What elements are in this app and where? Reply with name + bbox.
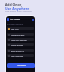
button[interactable]: My Wallet [7, 18, 34, 21]
staticText: Payment methods [7, 23, 24, 26]
staticText: PayPal account [11, 44, 23, 46]
staticText: Continue [17, 64, 26, 67]
staticText: Use Anywhere [5, 6, 30, 11]
staticText: My Wallet [10, 18, 21, 21]
button[interactable]: Add a new card [7, 54, 34, 57]
button[interactable]: Continue [7, 63, 35, 68]
button[interactable]: PayPal account [7, 43, 34, 46]
button[interactable]: Mastercard 8890 [7, 33, 34, 36]
staticText: Mastercard 8890 [11, 34, 25, 36]
button[interactable]: Visa 4421 [7, 27, 34, 30]
button[interactable]: Bank account 12 [7, 49, 34, 52]
staticText: Bank account 12 [11, 50, 25, 52]
button[interactable]: Apple Pay personal [7, 38, 34, 41]
staticText: Add a new card [11, 55, 24, 57]
staticText: Add Once, [5, 2, 23, 7]
staticText: One profile. Every checkout [5, 10, 32, 13]
staticText: Visa 4421 [11, 28, 19, 30]
staticText: Apple Pay personal [11, 39, 27, 41]
